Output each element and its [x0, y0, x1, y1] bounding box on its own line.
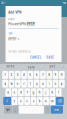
- staticText: d: [20, 90, 22, 94]
- button[interactable]: 1: [2, 71, 8, 79]
- staticText: SAVE: [46, 55, 54, 59]
- button[interactable]: x: [18, 97, 24, 105]
- staticText: t: [30, 82, 31, 86]
- staticText: Name: [8, 18, 14, 21]
- button[interactable]: SAVE: [46, 55, 55, 59]
- button[interactable]: j: [43, 88, 49, 96]
- staticText: 1: [4, 73, 6, 77]
- staticText: 4: [23, 73, 25, 77]
- button[interactable]: h: [37, 88, 43, 96]
- staticText: ›: [63, 65, 64, 69]
- button[interactable]: ⌫: [56, 97, 64, 105]
- staticText: Add VPN: [8, 10, 21, 14]
- button[interactable]: v: [31, 97, 36, 105]
- staticText: j: [46, 90, 47, 94]
- staticText: Next: [54, 108, 59, 111]
- staticText: 2: [10, 73, 12, 77]
- staticText: PrivateVPN: [8, 22, 25, 26]
- button[interactable]: ⇧: [3, 97, 11, 105]
- staticText: CANCEL: [30, 55, 42, 59]
- button[interactable]: a: [5, 88, 11, 96]
- button[interactable]: u: [40, 80, 46, 88]
- staticText: b: [39, 99, 41, 103]
- staticText: q: [4, 82, 6, 86]
- button[interactable]: i: [46, 80, 52, 88]
- staticText: a: [7, 90, 9, 94]
- staticText: y: [36, 82, 37, 86]
- button[interactable]: pptp: [21, 64, 42, 70]
- button[interactable]: s: [12, 88, 17, 96]
- staticText: Sym: [6, 108, 10, 111]
- staticText: p: [61, 82, 63, 86]
- button[interactable]: k: [49, 88, 55, 96]
- staticText: 8: [48, 73, 50, 77]
- staticText: c: [26, 99, 28, 103]
- staticText: f: [27, 90, 28, 94]
- staticText: s: [14, 90, 16, 94]
- staticText: l: [58, 90, 59, 94]
- button[interactable]: PPTP: [0, 64, 21, 70]
- button[interactable]: 3: [15, 71, 21, 79]
- staticText: i: [49, 82, 50, 86]
- staticText: 9: [54, 73, 56, 77]
- button[interactable]: q: [2, 80, 8, 88]
- staticText: PPTP: [8, 37, 16, 41]
- staticText: PPTP: [27, 22, 35, 26]
- staticText: n: [45, 99, 47, 103]
- button[interactable]: o: [53, 80, 58, 88]
- button[interactable]: p: [59, 80, 65, 88]
- staticText: 6: [36, 73, 38, 77]
- staticText: m: [51, 99, 54, 103]
- staticText: 7: [42, 73, 44, 77]
- button[interactable]: n: [43, 97, 49, 105]
- button[interactable]: 0: [59, 71, 65, 79]
- staticText: .: [47, 108, 48, 112]
- button[interactable]: Next: [51, 106, 63, 114]
- button[interactable]: w: [9, 80, 14, 88]
- button[interactable]: g: [31, 88, 36, 96]
- button[interactable]: m: [49, 97, 55, 105]
- button[interactable]: .: [44, 106, 50, 114]
- button[interactable]: l: [56, 88, 61, 96]
- staticText: g: [32, 90, 34, 94]
- button[interactable]: PPT: [42, 64, 63, 70]
- button[interactable]: c: [24, 97, 30, 105]
- button[interactable]: 9: [53, 71, 58, 79]
- staticText: ▾▴▮: [62, 1, 65, 4]
- staticText: 5: [29, 73, 31, 77]
- button[interactable]: t: [27, 80, 33, 88]
- button[interactable]: f: [24, 88, 30, 96]
- staticText: PPT: [49, 65, 55, 69]
- button[interactable]: 7: [40, 71, 46, 79]
- staticText: pptp: [28, 65, 35, 69]
- button[interactable]: 6: [34, 71, 39, 79]
- button[interactable]: e: [15, 80, 21, 88]
- staticText: v: [33, 99, 34, 103]
- button[interactable]: ,: [12, 106, 18, 114]
- staticText: PPTP: [6, 65, 14, 69]
- staticText: ▾: [18, 37, 19, 41]
- staticText: k: [51, 90, 53, 94]
- staticText: ⇧: [6, 99, 9, 103]
- button[interactable]: r: [21, 80, 27, 88]
- button[interactable]: 8: [46, 71, 52, 79]
- staticText: ,: [15, 108, 16, 112]
- button[interactable]: Sym: [4, 106, 12, 114]
- button[interactable]: CANCEL: [29, 55, 42, 59]
- staticText: Type: [8, 32, 12, 35]
- button[interactable]: d: [18, 88, 24, 96]
- staticText: x: [20, 99, 22, 103]
- button[interactable]: b: [37, 97, 43, 105]
- staticText: o: [54, 82, 56, 86]
- staticText: u: [42, 82, 44, 86]
- staticText: ⌫: [57, 99, 62, 103]
- staticText: 0: [61, 73, 63, 77]
- staticText: z: [14, 99, 16, 103]
- button[interactable]: [19, 106, 44, 114]
- button[interactable]: y: [34, 80, 39, 88]
- staticText: h: [39, 90, 41, 94]
- button[interactable]: 2: [9, 71, 14, 79]
- button[interactable]: z: [12, 97, 17, 105]
- button[interactable]: 4: [21, 71, 27, 79]
- button[interactable]: 5: [27, 71, 33, 79]
